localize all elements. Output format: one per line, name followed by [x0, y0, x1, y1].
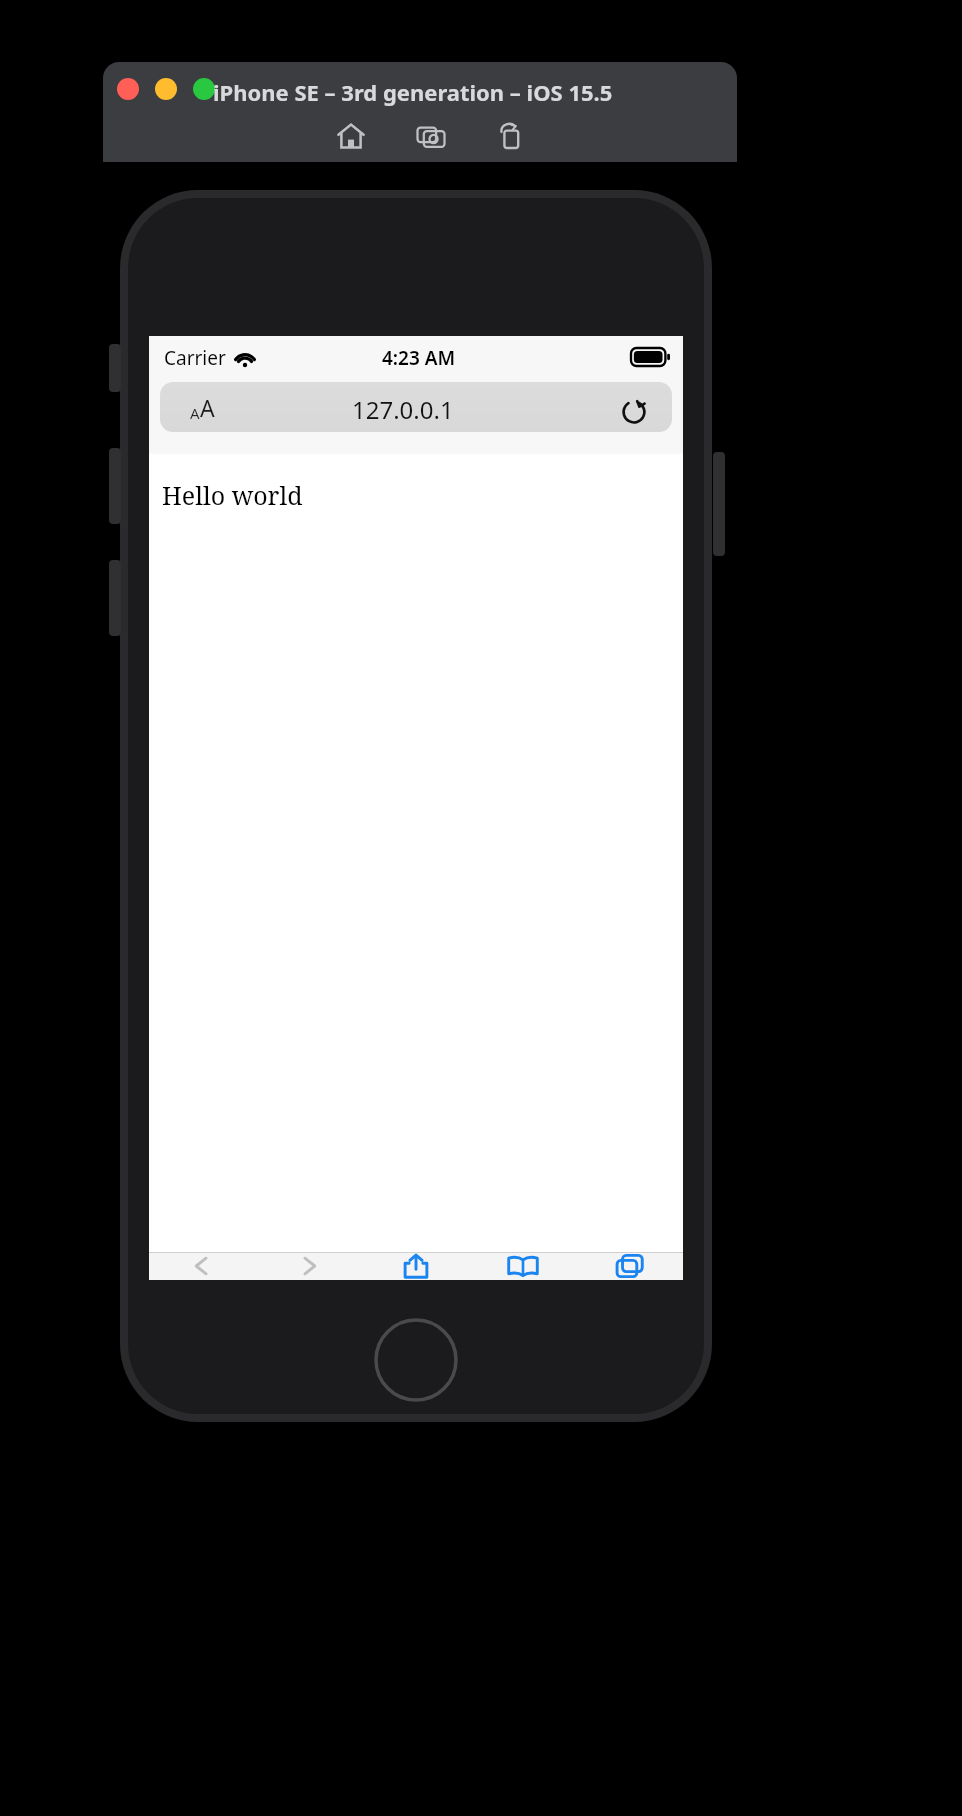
button[interactable]: Reload — [612, 389, 656, 432]
button[interactable]: Bookmarks — [469, 1252, 576, 1280]
button[interactable]: Zoom — [193, 78, 215, 100]
button[interactable]: Share — [362, 1252, 469, 1280]
button[interactable]: Back — [149, 1252, 255, 1280]
button[interactable]: Rotate — [491, 116, 531, 156]
staticText: 127.0.0.1 — [352, 393, 454, 426]
staticText: iPhone SE – 3rd generation – iOS 15.5 — [213, 77, 613, 107]
button[interactable]: Minimize — [155, 78, 177, 100]
button[interactable]: Tabs — [576, 1252, 683, 1280]
button[interactable]: Home — [331, 116, 371, 156]
button[interactable]: Forward — [255, 1252, 362, 1280]
staticText: 4:23 AM — [382, 345, 456, 371]
button[interactable]: Screenshot — [411, 116, 451, 156]
staticText: A — [190, 403, 200, 423]
staticText: Carrier — [164, 345, 226, 371]
staticText: A — [200, 392, 215, 423]
button[interactable]: Text size — [172, 388, 232, 426]
button[interactable]: Close — [117, 78, 139, 100]
button[interactable]: Text size — [160, 382, 672, 432]
staticText: Hello world — [162, 478, 303, 512]
